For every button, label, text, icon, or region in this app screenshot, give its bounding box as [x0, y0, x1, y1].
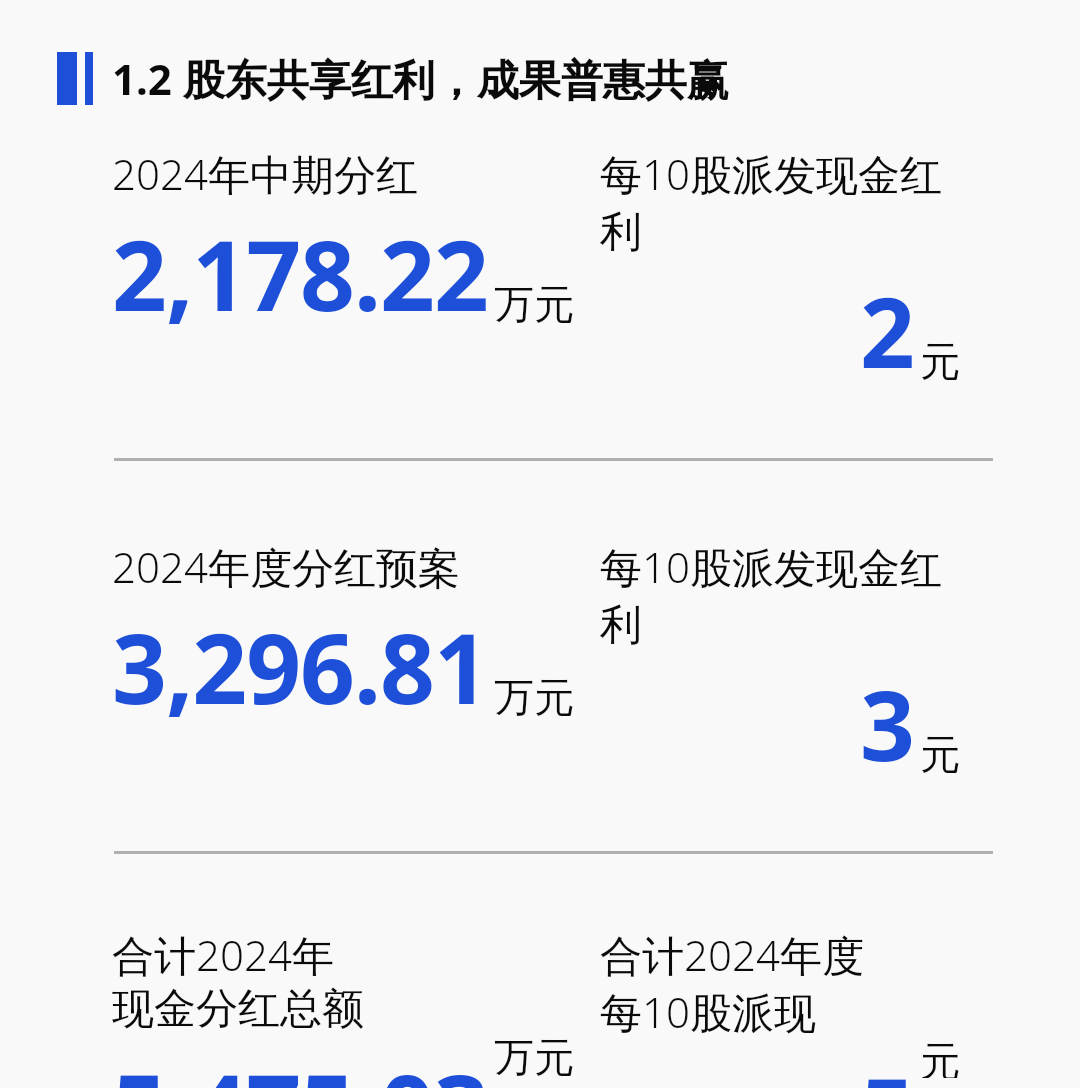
button[interactable]: 2024年度分红预案 [112, 538, 600, 732]
staticText: 2024年度分红预案 [112, 538, 460, 595]
staticText: 万元 [494, 672, 574, 722]
staticText: 每10股派发现金红利 [600, 145, 960, 259]
staticText: 合计2024年 [112, 926, 334, 983]
staticText: 现金分红总额 [112, 983, 364, 1036]
staticText: 2024年中期分红 [112, 145, 418, 202]
staticText: 2 [860, 265, 914, 396]
staticText: 万元 [494, 279, 574, 329]
button[interactable]: 1.2 股东共享红利，成果普惠共赢 [0, 50, 1080, 107]
staticText: 2,178.22 [112, 208, 488, 339]
staticText: 元 [920, 336, 960, 386]
button[interactable]: 合计2024年 [112, 926, 600, 1088]
button[interactable]: 2024年中期分红 [112, 145, 600, 339]
staticText: 元 [920, 729, 960, 779]
staticText: 3,296.81 [112, 601, 488, 732]
staticText: 每10股派现 [600, 983, 816, 1040]
staticText: 每10股派发现金红利 [600, 538, 960, 652]
staticText: 5,475.03 [112, 1042, 488, 1088]
staticText: 合计2024年度 [600, 926, 864, 983]
staticText: 5 [860, 1046, 914, 1088]
staticText: 万元 [494, 1032, 574, 1078]
staticText: 元 [920, 1036, 960, 1078]
button[interactable]: 合计2024年度 [600, 926, 960, 1088]
staticText: 1.2 股东共享红利，成果普惠共赢 [112, 50, 729, 107]
staticText: 3 [860, 658, 914, 789]
button[interactable]: 每10股派发现金红利 [600, 145, 960, 396]
button[interactable]: 每10股派发现金红利 [600, 538, 960, 789]
